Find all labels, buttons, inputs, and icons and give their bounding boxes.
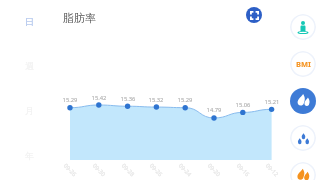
staticText: 15.21 [260,98,284,106]
staticText: 日 [25,16,34,27]
staticText: 09-12 [260,158,284,180]
staticText: 15.29 [173,96,197,104]
button[interactable]: Water [290,125,316,151]
staticText: 15.36 [116,95,140,103]
staticText: 09-30 [87,158,111,180]
staticText: 15.06 [231,101,255,109]
staticText: 09-26 [58,158,82,180]
staticText: 09-20 [202,158,226,180]
staticText: 月 [25,105,34,116]
staticText: 15.29 [58,96,82,104]
staticText: 15.32 [144,96,168,104]
staticText: BMI [296,59,311,69]
staticText: 09-26 [144,158,168,180]
button[interactable]: BMI [290,51,316,77]
staticText: 09-24 [173,158,197,180]
button[interactable]: Muscle [290,162,316,180]
staticText: 09-16 [231,158,255,180]
staticText: 14.79 [202,106,226,114]
staticText: 09-28 [116,158,140,180]
staticText: 脂肪率 [63,11,96,25]
button[interactable]: Body [290,14,316,40]
button[interactable]: 日 [18,10,41,33]
staticText: 年 [25,150,34,161]
staticText: 週 [25,60,34,71]
button[interactable]: Body fat [290,88,316,114]
button[interactable]: Fullscreen [246,7,262,23]
staticText: 15.42 [87,94,111,102]
